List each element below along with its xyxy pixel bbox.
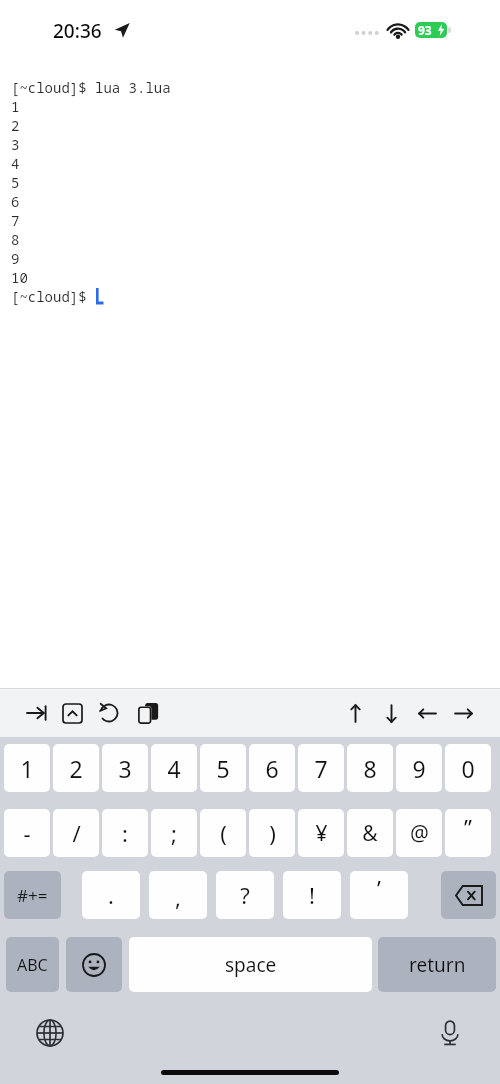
button[interactable]: ¥ bbox=[298, 809, 344, 857]
staticText: 3 bbox=[118, 753, 132, 784]
button[interactable]: Control bbox=[56, 697, 88, 729]
button[interactable]: : bbox=[102, 809, 148, 857]
staticText: @ bbox=[410, 819, 429, 848]
button[interactable]: Paste bbox=[132, 697, 164, 729]
staticText: 2 bbox=[69, 753, 83, 784]
button[interactable]: Up bbox=[339, 697, 371, 729]
staticText: ! bbox=[309, 880, 315, 910]
button[interactable]: Left bbox=[411, 697, 443, 729]
staticText: 9 bbox=[11, 249, 20, 268]
button[interactable]: ” bbox=[445, 809, 491, 857]
button[interactable]: Change language bbox=[32, 1015, 68, 1051]
staticText: 7 bbox=[314, 753, 328, 784]
staticText: 10 bbox=[11, 268, 28, 287]
staticText: 5 bbox=[11, 173, 20, 192]
staticText: ’ bbox=[377, 873, 381, 903]
button[interactable]: Dictation bbox=[432, 1015, 468, 1051]
staticText: 20:36 bbox=[53, 18, 102, 44]
button[interactable]: ’ bbox=[350, 871, 408, 919]
staticText: - bbox=[23, 818, 31, 848]
button[interactable]: & bbox=[347, 809, 393, 857]
staticText: ” bbox=[464, 812, 472, 842]
staticText: 6 bbox=[265, 753, 279, 784]
button[interactable]: Backspace bbox=[441, 871, 496, 919]
button[interactable]: 5 bbox=[200, 744, 246, 792]
button[interactable]: , bbox=[149, 871, 207, 919]
button[interactable]: @ bbox=[396, 809, 442, 857]
staticText: 2 bbox=[11, 116, 20, 135]
button[interactable]: / bbox=[53, 809, 99, 857]
staticText: ; bbox=[171, 818, 177, 848]
button[interactable]: Down bbox=[375, 697, 407, 729]
staticText: : bbox=[122, 818, 128, 848]
button[interactable]: Tab bbox=[21, 697, 53, 729]
button[interactable]: 3 bbox=[102, 744, 148, 792]
button[interactable]: #+= bbox=[4, 871, 61, 919]
staticText: ? bbox=[240, 880, 250, 910]
button[interactable]: space bbox=[129, 937, 372, 992]
button[interactable]: ? bbox=[216, 871, 274, 919]
button[interactable]: 2 bbox=[53, 744, 99, 792]
staticText: 1 bbox=[11, 97, 20, 116]
button[interactable]: return bbox=[378, 937, 496, 992]
staticText: 6 bbox=[11, 192, 20, 211]
button[interactable]: ( bbox=[200, 809, 246, 857]
staticText: [~cloud]$ lua 3.lua bbox=[11, 78, 171, 97]
staticText: / bbox=[72, 818, 81, 848]
staticText: 8 bbox=[363, 753, 377, 784]
staticText: 0 bbox=[461, 753, 475, 784]
staticText: 1 bbox=[20, 753, 34, 784]
staticText: 4 bbox=[167, 753, 181, 784]
staticText: 4 bbox=[11, 154, 20, 173]
button[interactable]: ! bbox=[283, 871, 341, 919]
staticText: ABC bbox=[17, 954, 48, 976]
staticText: 9 bbox=[412, 753, 426, 784]
staticText: 8 bbox=[11, 230, 20, 249]
staticText: 5 bbox=[216, 753, 230, 784]
button[interactable]: Right bbox=[447, 697, 479, 729]
button[interactable]: 7 bbox=[298, 744, 344, 792]
button[interactable]: ; bbox=[151, 809, 197, 857]
button[interactable]: ) bbox=[249, 809, 295, 857]
staticText: space bbox=[225, 952, 277, 978]
button[interactable]: History bbox=[93, 697, 125, 729]
button[interactable]: 9 bbox=[396, 744, 442, 792]
staticText: #+= bbox=[17, 884, 48, 907]
button[interactable]: Emoji bbox=[66, 937, 122, 992]
button[interactable]: - bbox=[4, 809, 50, 857]
staticText: ¥ bbox=[315, 819, 328, 848]
staticText: . bbox=[108, 880, 114, 910]
staticText: ( bbox=[220, 818, 227, 848]
button[interactable]: 6 bbox=[249, 744, 295, 792]
button[interactable]: 4 bbox=[151, 744, 197, 792]
staticText: 93 bbox=[418, 22, 432, 38]
staticText: , bbox=[175, 882, 181, 912]
staticText: 7 bbox=[11, 211, 20, 230]
button[interactable]: 1 bbox=[4, 744, 50, 792]
staticText: 3 bbox=[11, 135, 20, 154]
staticText: & bbox=[362, 819, 378, 848]
staticText: [~cloud]$ bbox=[11, 287, 95, 306]
staticText: ) bbox=[269, 818, 276, 848]
button[interactable]: . bbox=[82, 871, 140, 919]
button[interactable]: 8 bbox=[347, 744, 393, 792]
button[interactable]: 0 bbox=[445, 744, 491, 792]
staticText: return bbox=[409, 952, 466, 978]
button[interactable]: ABC bbox=[6, 937, 59, 992]
